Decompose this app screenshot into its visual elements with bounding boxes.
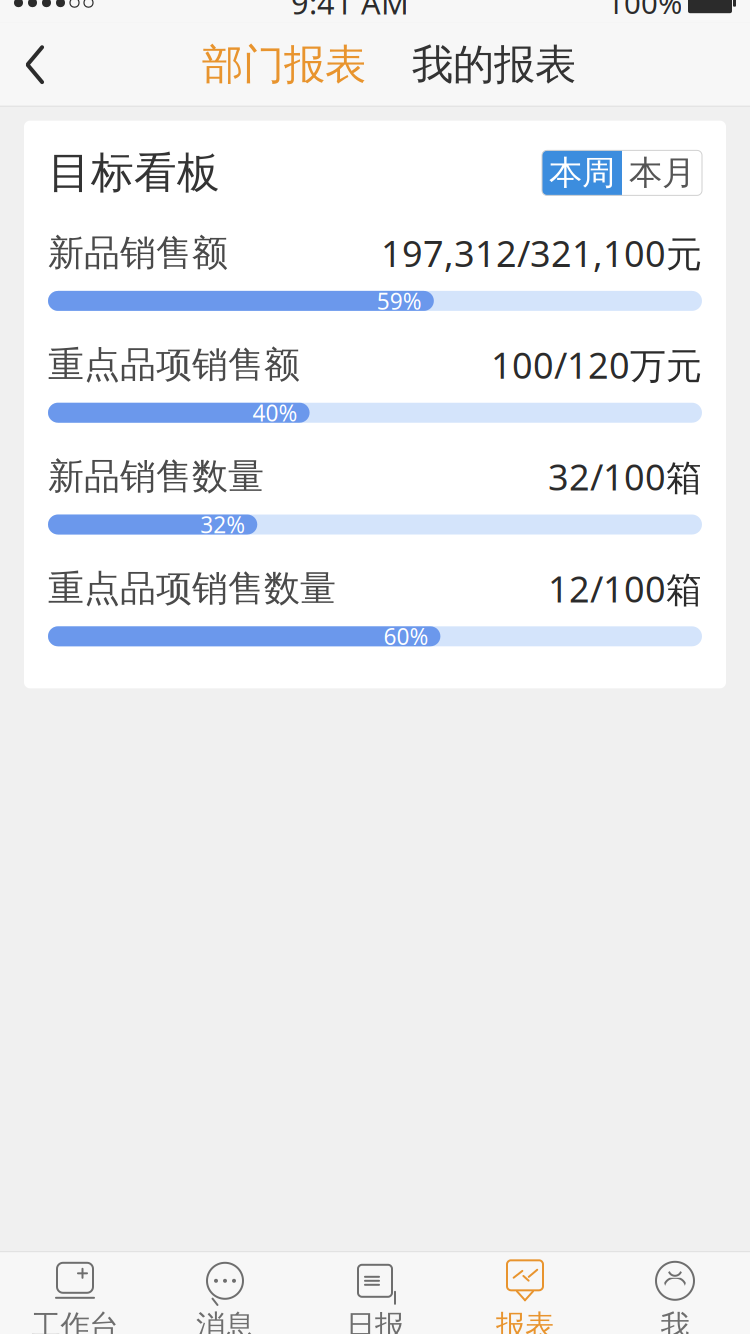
button[interactable]: Back [0, 23, 70, 107]
staticText: 重点品项销售数量 [48, 566, 336, 610]
staticText: 100% [607, 0, 682, 22]
staticText: 197,312/321,100元 [381, 229, 702, 277]
staticText: 32/100箱 [548, 453, 702, 500]
button[interactable]: 消息 [150, 1252, 300, 1334]
staticText: 目标看板 [48, 147, 220, 199]
staticText: 新品销售额 [48, 231, 228, 275]
button[interactable]: 本月 [622, 150, 702, 195]
staticText: 32% [200, 509, 245, 540]
staticText: 12/100箱 [548, 564, 702, 612]
button[interactable]: 我的报表 [412, 39, 576, 90]
staticText: 40% [253, 398, 298, 428]
staticText: 报表 [496, 1308, 554, 1334]
button[interactable]: 部门报表 [202, 39, 366, 90]
button[interactable]: 工作台 [0, 1252, 150, 1334]
staticText: 工作台 [31, 1308, 118, 1334]
staticText: 部门报表 [202, 39, 366, 90]
staticText: 日报 [346, 1308, 404, 1334]
staticText: 我的报表 [412, 39, 576, 90]
staticText: 9:41 AM [291, 0, 409, 23]
button[interactable]: 日报 [300, 1252, 450, 1334]
staticText: 本周 [549, 152, 615, 193]
staticText: 59% [377, 286, 422, 316]
button[interactable]: 我 [600, 1252, 750, 1334]
staticText: 重点品项销售额 [48, 343, 300, 387]
staticText: 60% [383, 621, 428, 651]
staticText: 我 [660, 1308, 689, 1334]
staticText: 100/120万元 [491, 341, 702, 389]
staticText: 本月 [629, 152, 695, 193]
button[interactable]: 报表 [450, 1252, 600, 1334]
staticText: 新品销售数量 [48, 454, 264, 499]
staticText: 消息 [196, 1308, 254, 1334]
button[interactable]: 本周 [542, 150, 622, 195]
